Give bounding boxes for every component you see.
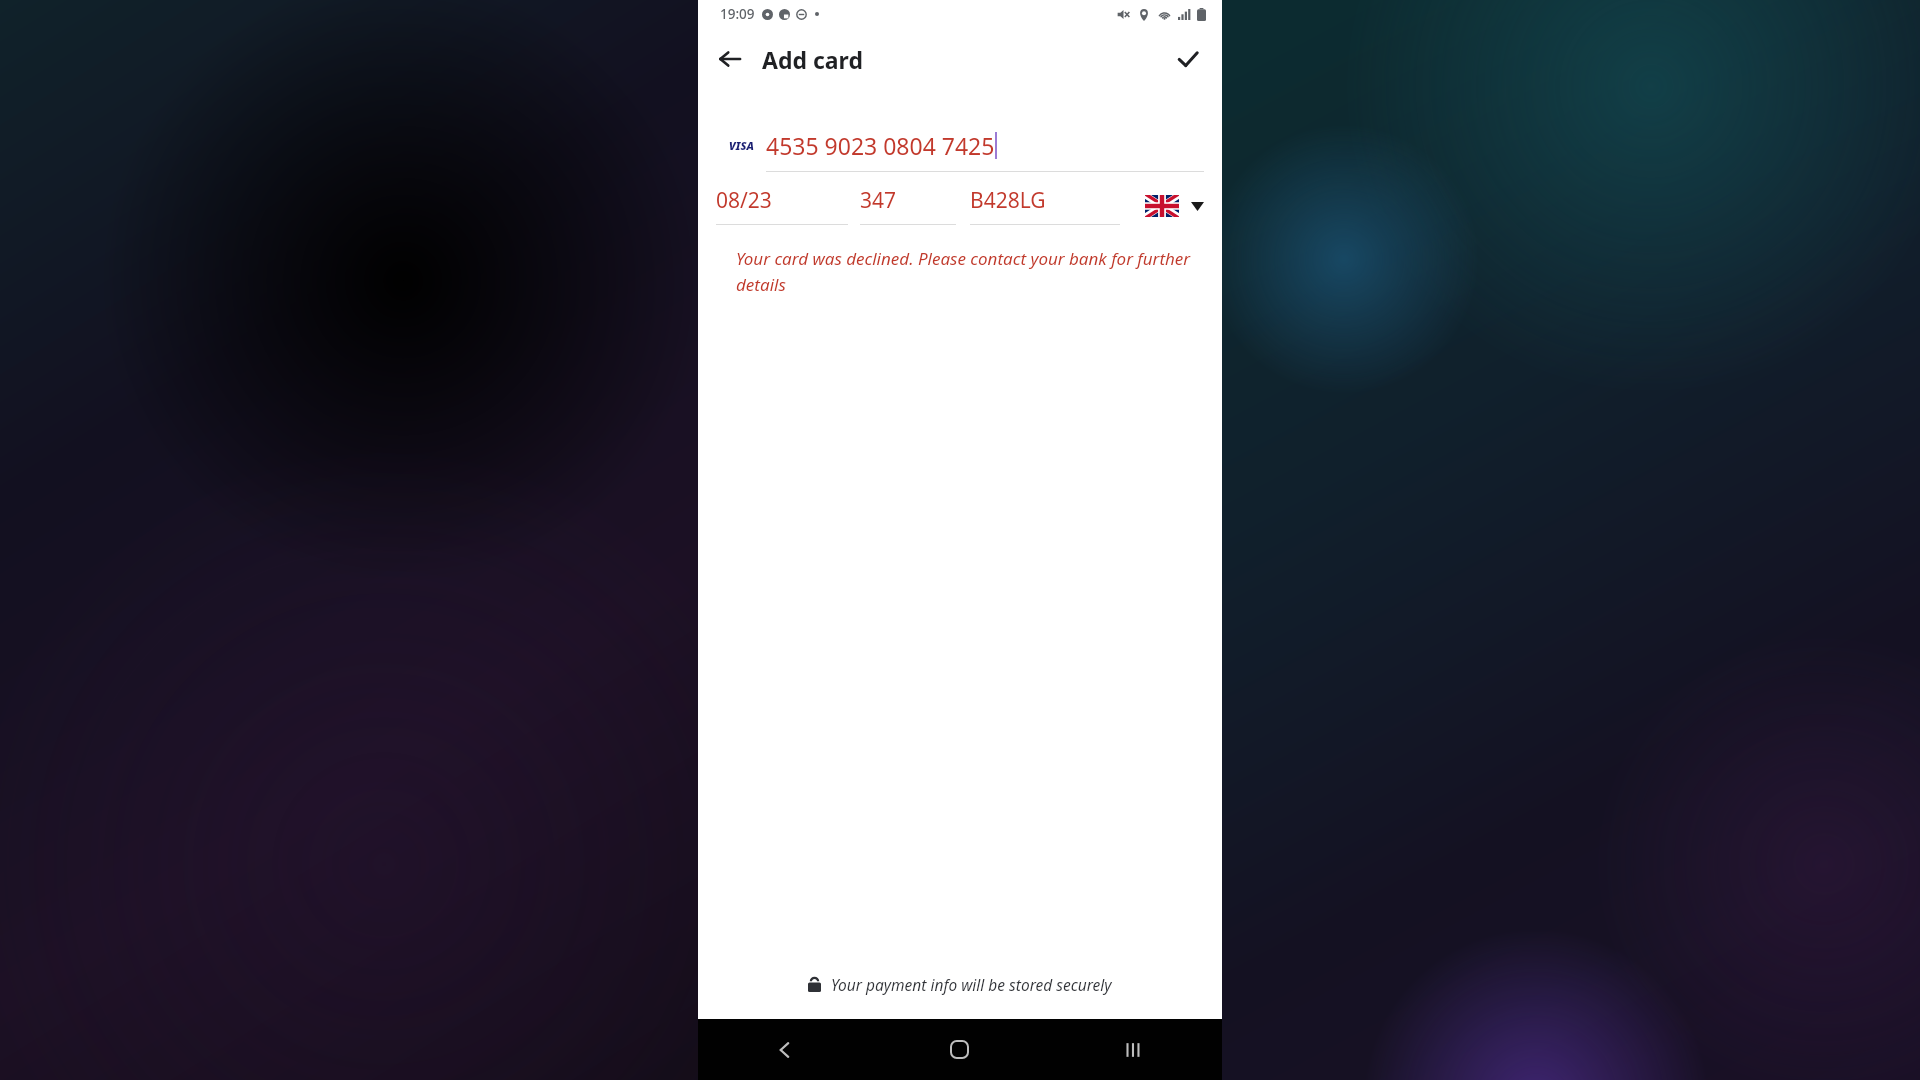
staticText: 08/23 — [716, 186, 772, 215]
button[interactable]: B428LG — [970, 186, 1120, 225]
staticText: VISA — [729, 138, 754, 153]
button[interactable]: 4535 9023 0804 7425 — [766, 130, 1204, 161]
button[interactable]: 08/23 — [716, 186, 848, 225]
staticText: Add card — [762, 44, 863, 75]
button[interactable]: Select country — [1145, 195, 1204, 217]
button[interactable]: Save card — [1164, 35, 1212, 83]
staticText: 347 — [860, 186, 897, 215]
staticText: 4535 9023 0804 7425 — [766, 130, 995, 161]
staticText: Your payment info will be stored securel… — [831, 974, 1112, 995]
button[interactable]: Back — [698, 1019, 872, 1080]
staticText: Your card was declined. Please contact y… — [736, 247, 1192, 296]
button[interactable]: Back — [706, 35, 754, 83]
staticText: 19:09 — [720, 5, 755, 23]
staticText: B428LG — [970, 186, 1046, 215]
button[interactable]: Home — [872, 1019, 1047, 1080]
button[interactable]: 347 — [860, 186, 956, 225]
button[interactable]: Recent apps — [1047, 1019, 1222, 1080]
